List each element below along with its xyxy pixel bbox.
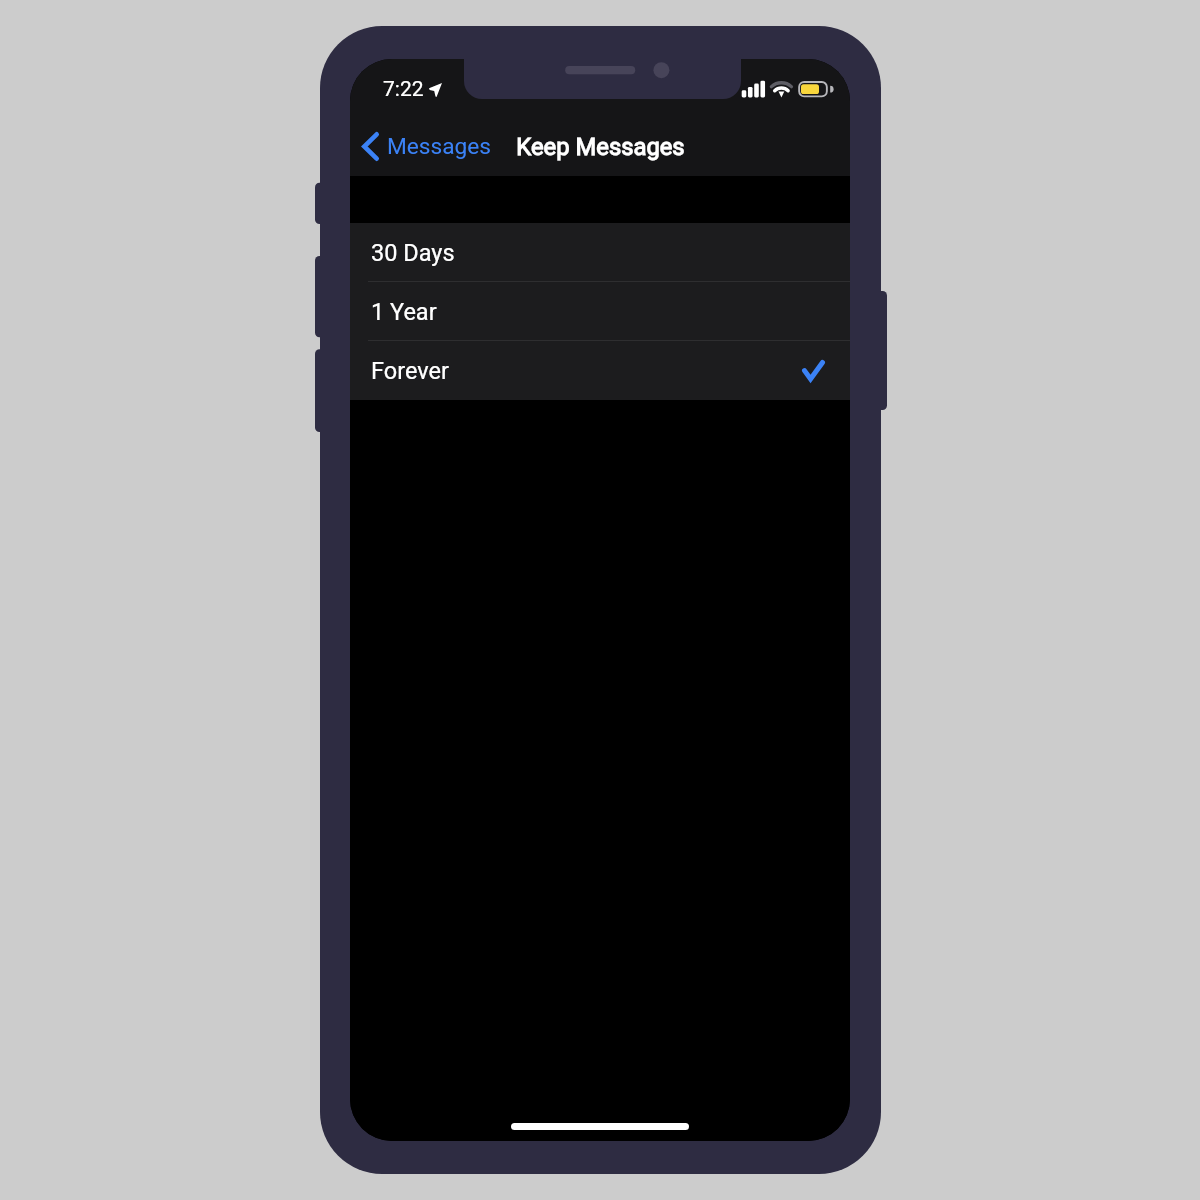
staticText: Messages xyxy=(387,133,492,160)
button[interactable]: 30 Days xyxy=(350,223,850,282)
other: Selected xyxy=(803,361,824,381)
staticText: 7:22 xyxy=(383,77,424,102)
button[interactable]: 1 Year xyxy=(350,282,850,341)
staticText: 30 Days xyxy=(371,239,455,267)
staticText: Forever xyxy=(371,357,449,385)
button[interactable]: Forever xyxy=(350,341,850,400)
button[interactable]: Back to Messages xyxy=(358,126,502,167)
staticText: Keep Messages xyxy=(516,133,685,161)
staticText: 1 Year xyxy=(371,298,437,326)
